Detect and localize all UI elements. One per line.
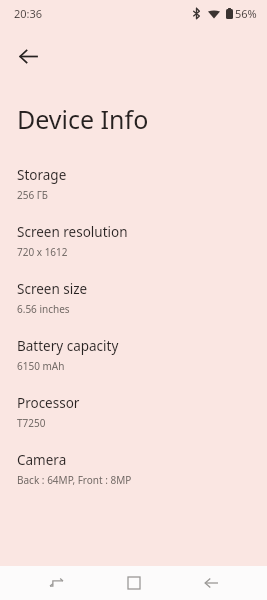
staticText: Device Info bbox=[17, 102, 149, 136]
staticText: Back : 64MP, Front : 8MP bbox=[17, 473, 132, 487]
button[interactable]: Battery capacity bbox=[0, 337, 267, 394]
staticText: 720 x 1612 bbox=[17, 245, 68, 259]
button[interactable]: Processor bbox=[0, 394, 267, 451]
staticText: 6150 mAh bbox=[17, 359, 65, 373]
button[interactable]: Back bbox=[189, 566, 233, 600]
staticText: Camera bbox=[17, 451, 67, 469]
staticText: Screen size bbox=[17, 280, 88, 298]
staticText: Screen resolution bbox=[17, 223, 128, 241]
staticText: Battery capacity bbox=[17, 337, 119, 355]
button[interactable]: Home bbox=[112, 566, 156, 600]
staticText: 56% bbox=[235, 6, 257, 21]
staticText: Processor bbox=[17, 394, 80, 412]
staticText: 20:36 bbox=[14, 6, 43, 21]
button[interactable]: Back bbox=[8, 36, 48, 76]
button[interactable]: Recent apps bbox=[34, 566, 78, 600]
staticText: T7250 bbox=[17, 416, 46, 430]
staticText: 6.56 inches bbox=[17, 302, 70, 316]
staticText: 256 ГБ bbox=[17, 188, 48, 202]
staticText: Storage bbox=[17, 166, 67, 184]
button[interactable]: Camera bbox=[0, 451, 267, 508]
button[interactable]: Screen resolution bbox=[0, 223, 267, 280]
button[interactable]: Storage bbox=[0, 166, 267, 223]
button[interactable]: Screen size bbox=[0, 280, 267, 337]
